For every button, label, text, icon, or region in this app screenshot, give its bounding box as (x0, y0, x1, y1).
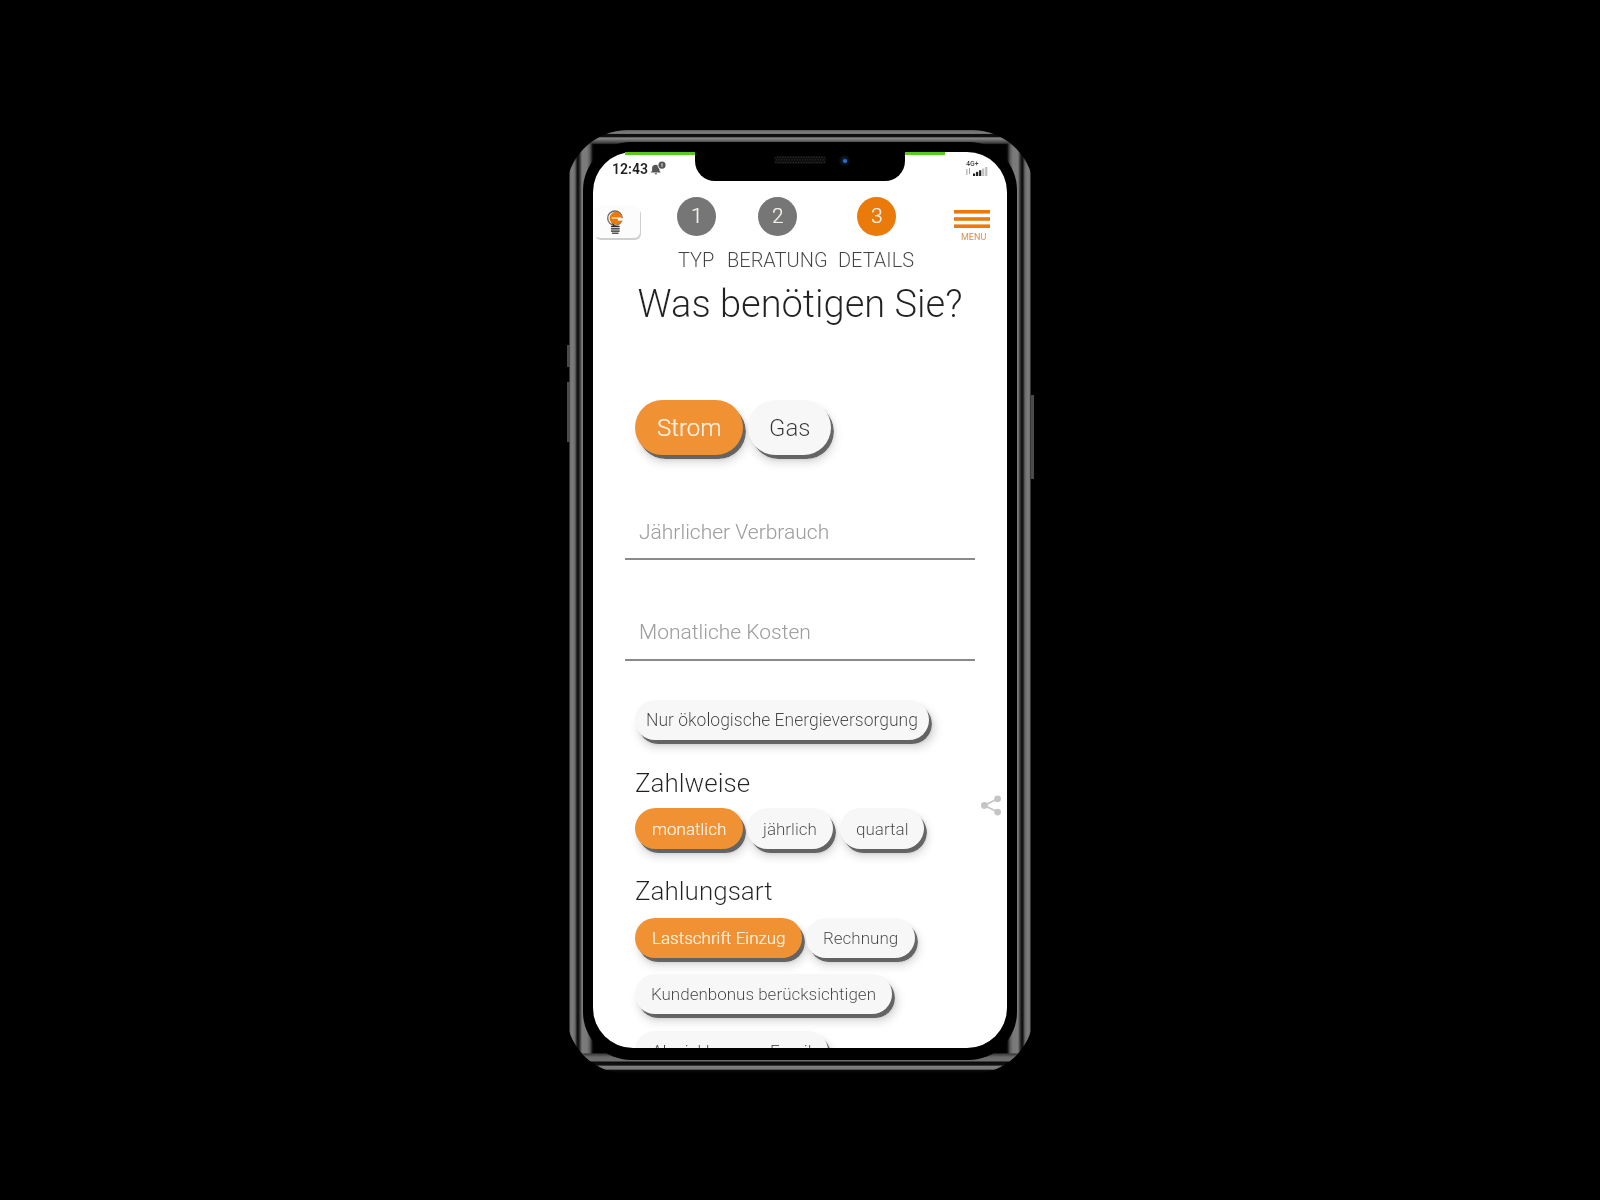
button[interactable]: Strom (635, 400, 743, 455)
button[interactable]: Kundenbonus berücksichtigen (635, 974, 892, 1014)
button[interactable]: Abwicklung per Email (635, 1031, 828, 1048)
staticText: Abwicklung per Email (652, 1041, 812, 1048)
staticText: Rechnung (823, 928, 899, 948)
staticText: Strom (657, 414, 722, 442)
staticText: Zahlungsart (635, 876, 773, 906)
button[interactable]: 3 (816, 197, 936, 271)
button[interactable]: Menu (950, 204, 994, 242)
staticText: 1 (691, 204, 703, 229)
button[interactable]: quartal (840, 808, 924, 849)
button[interactable]: 1 (636, 197, 756, 271)
staticText: DETAILS (838, 248, 915, 271)
staticText: 4G+ (966, 160, 979, 168)
button[interactable]: Lastschrift Einzug (635, 918, 802, 958)
staticText: 3 (871, 204, 883, 229)
staticText: Monatliche Kosten (639, 620, 811, 645)
button[interactable]: Gas (748, 400, 831, 455)
staticText: Was benötigen Sie? (593, 282, 1007, 327)
staticText: monatlich (652, 819, 727, 839)
button[interactable]: Share (980, 794, 1002, 816)
staticText: Lastschrift Einzug (652, 928, 786, 948)
button[interactable]: monatlich (635, 808, 743, 849)
button[interactable]: Logo (594, 206, 640, 238)
staticText: MENU (961, 232, 987, 243)
staticText: Gas (769, 414, 811, 442)
staticText: Zahlweise (635, 768, 751, 798)
button[interactable]: jährlich (747, 808, 833, 849)
staticText: quartal (856, 819, 909, 839)
staticText: jährlich (763, 819, 817, 839)
staticText: Kundenbonus berücksichtigen (651, 984, 876, 1004)
staticText: Nur ökologische Energieversorgung (646, 710, 918, 731)
staticText: Jährlicher Verbrauch (639, 520, 830, 545)
staticText: 2 (772, 204, 784, 229)
staticText: TYP (678, 248, 715, 271)
button[interactable]: 2 (717, 197, 837, 271)
staticText: BERATUNG (727, 248, 828, 271)
button[interactable]: Nur ökologische Energieversorgung (635, 700, 929, 740)
button[interactable]: Rechnung (806, 918, 915, 958)
staticText: 12:43 (612, 161, 649, 177)
